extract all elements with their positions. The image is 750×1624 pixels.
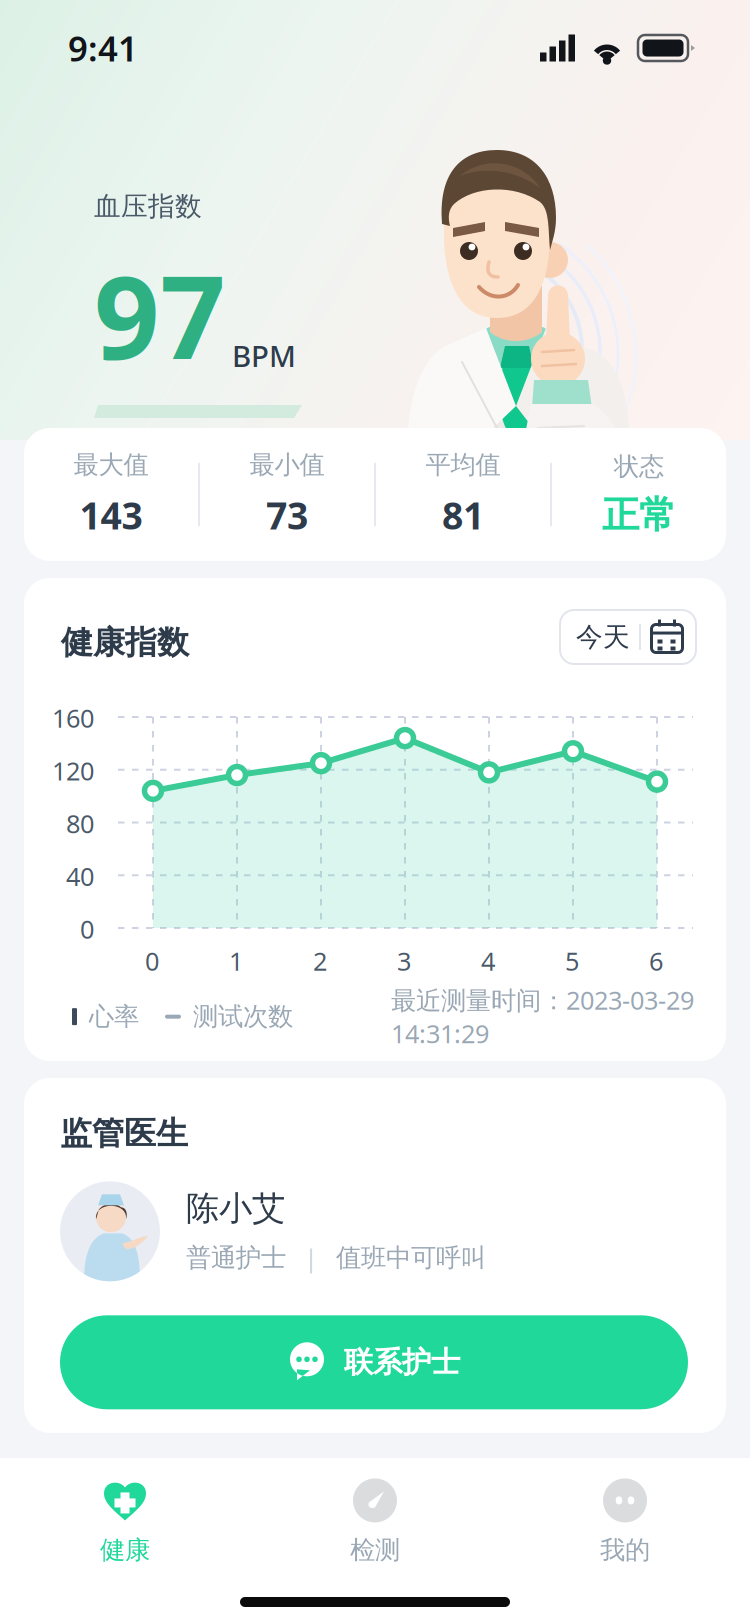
staticText: 今天 [576,621,630,653]
staticText: 0 [80,912,94,946]
staticText: 160 [52,701,94,735]
staticText: 9:41 [68,25,138,71]
staticText: 监管医生 [60,1114,188,1153]
staticText: 143 [79,490,142,540]
staticText: 80 [66,807,94,840]
button[interactable]: 健康 [0,1458,250,1586]
staticText: 1 [229,944,243,978]
staticText: 97 [94,239,226,391]
button[interactable]: 联系护士 [60,1315,688,1409]
staticText: 最小值 [249,449,324,480]
staticText: BPM [232,336,296,375]
staticText: 心率 [89,1001,139,1032]
staticText: 120 [52,754,94,787]
staticText: 4 [481,944,495,978]
staticText: 平均值 [425,449,500,480]
staticText: 血压指数 [94,190,202,223]
staticText: 普通护士 [186,1242,286,1273]
staticText: | [304,1241,318,1275]
staticText: 联系护士 [344,1344,460,1380]
staticText: 40 [66,859,94,893]
staticText: 我的 [600,1534,650,1565]
staticText: 3 [397,944,411,978]
staticText: 0 [145,944,159,978]
staticText: 最近测量时间：2023-03-29 14:31:29 [391,983,694,1050]
staticText: 6 [649,944,663,978]
staticText: 值班中可呼叫 [336,1242,486,1273]
staticText: 81 [442,490,484,540]
button[interactable]: 我的 [500,1458,750,1586]
staticText: 陈小艾 [186,1188,285,1229]
staticText: 健康指数 [61,623,189,662]
button[interactable]: 检测 [250,1458,500,1586]
staticText: 状态 [614,451,664,482]
staticText: 73 [266,490,308,540]
staticText: 5 [565,944,579,978]
staticText: 最大值 [73,449,148,480]
staticText: 健康 [100,1534,150,1565]
staticText: 测试次数 [193,1001,293,1032]
staticText: 2 [313,944,327,978]
staticText: 检测 [350,1534,400,1565]
button[interactable]: 今天 [560,610,696,664]
staticText: 正常 [602,492,676,538]
